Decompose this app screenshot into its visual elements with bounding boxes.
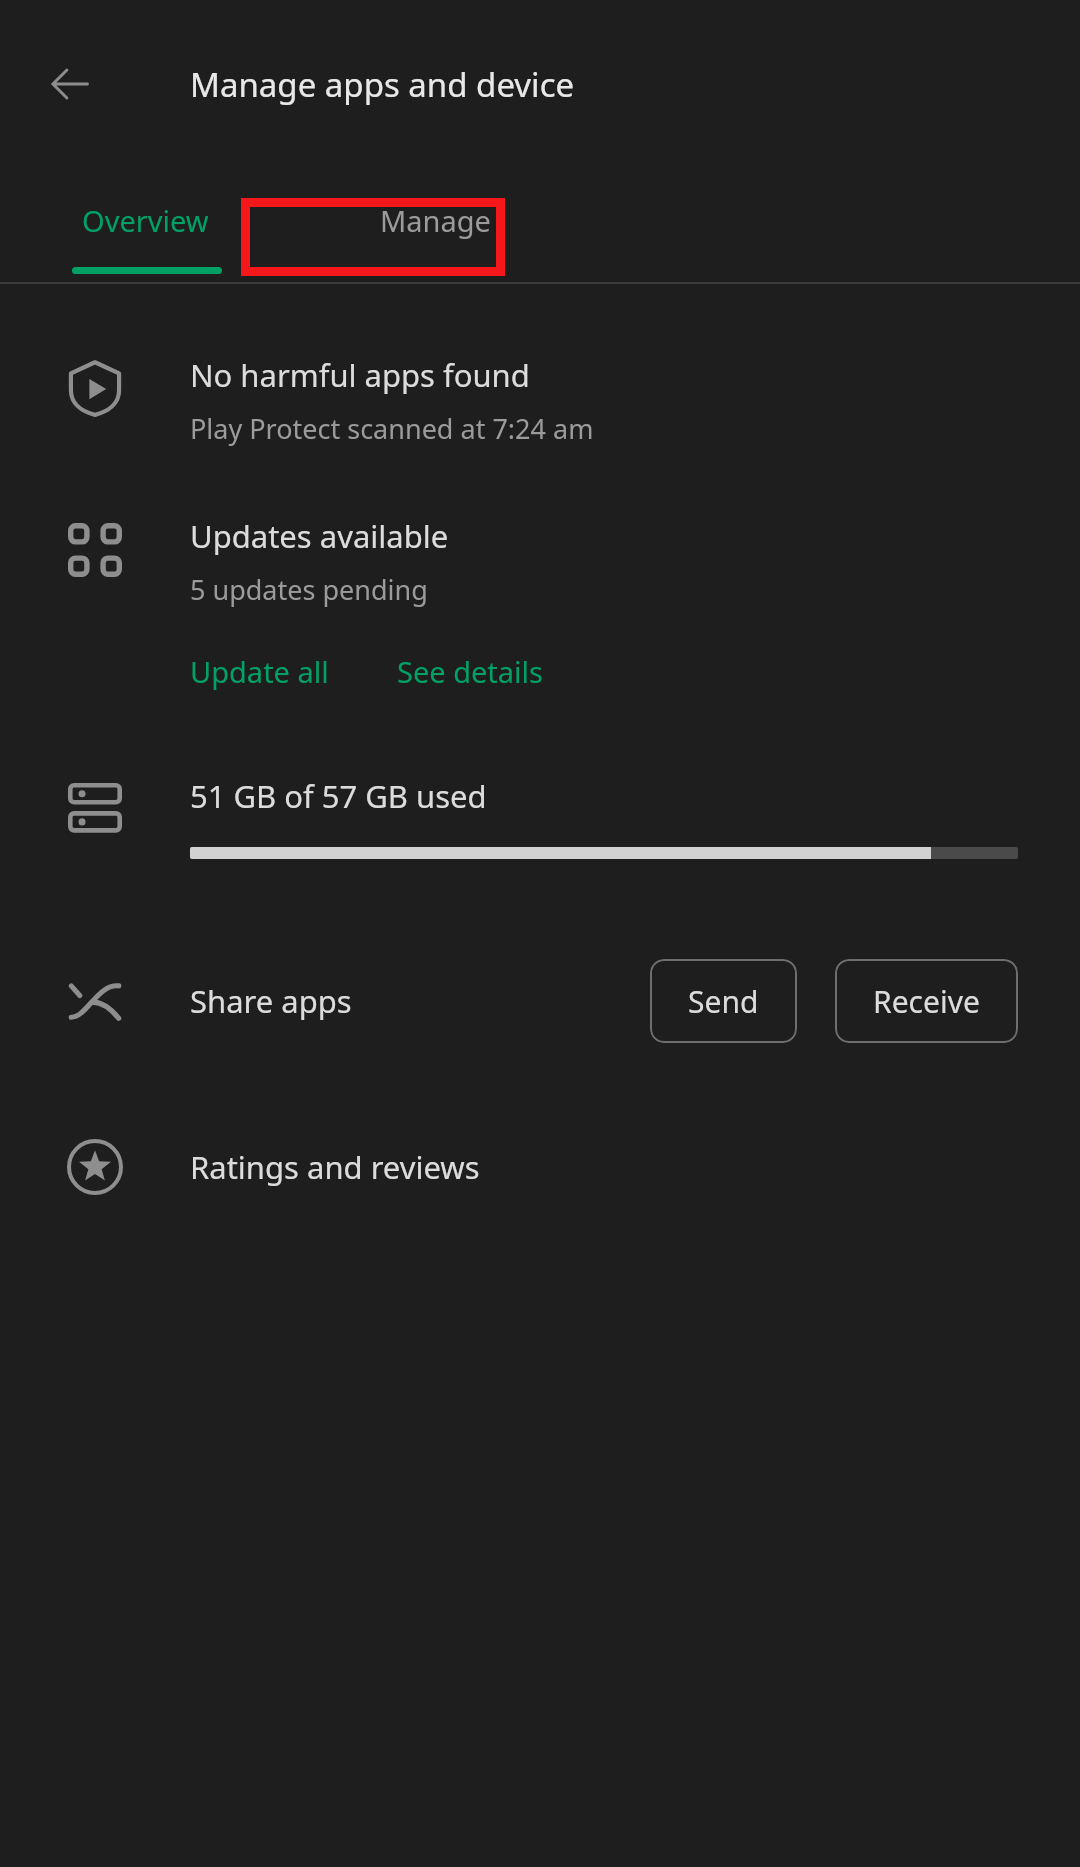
staticText: Manage apps and device: [190, 62, 575, 107]
button[interactable]: Ratings and reviews: [0, 1139, 1080, 1195]
staticText: Overview: [82, 201, 209, 240]
button[interactable]: Back: [34, 48, 106, 120]
button[interactable]: Send: [650, 959, 797, 1043]
staticText: No harmful apps found: [190, 354, 530, 396]
staticText: Update all: [190, 652, 329, 691]
staticText: Ratings and reviews: [190, 1146, 480, 1188]
staticText: Send: [688, 981, 759, 1022]
button[interactable]: Overview: [0, 168, 290, 272]
staticText: Play Protect scanned at 7:24 am: [190, 410, 594, 447]
staticText: Manage: [380, 201, 491, 240]
staticText: Receive: [873, 981, 980, 1022]
button[interactable]: 51 GB of 57 GB used: [0, 775, 1080, 859]
button[interactable]: Receive: [835, 959, 1018, 1043]
button[interactable]: Update all: [190, 652, 329, 691]
staticText: 5 updates pending: [190, 571, 428, 608]
staticText: Updates available: [190, 515, 449, 557]
button[interactable]: Updates available: [0, 515, 1080, 691]
button[interactable]: See details: [397, 652, 543, 691]
button[interactable]: Manage: [290, 168, 580, 272]
staticText: Share apps: [190, 980, 352, 1022]
staticText: 51 GB of 57 GB used: [190, 775, 487, 817]
staticText: See details: [397, 652, 543, 691]
button[interactable]: No harmful apps found: [0, 354, 1080, 447]
